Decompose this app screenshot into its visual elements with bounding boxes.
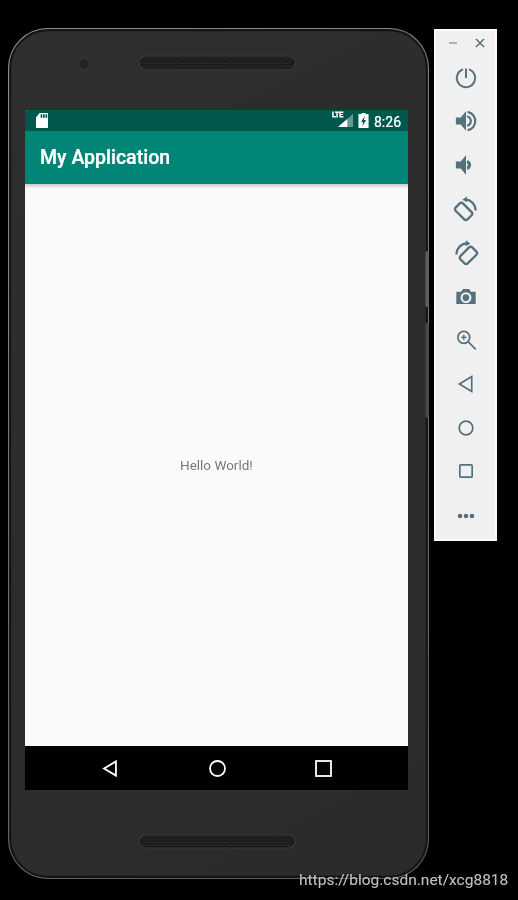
button[interactable]: Minimize [442, 32, 464, 54]
button[interactable]: Zoom [444, 318, 488, 362]
button[interactable]: Home [444, 406, 488, 450]
button[interactable]: Rotate left [444, 187, 488, 231]
button[interactable]: Volume up [444, 99, 488, 143]
button[interactable]: More [444, 494, 488, 538]
staticText: Hello World! [180, 457, 253, 473]
button[interactable]: Volume down [444, 143, 488, 187]
button[interactable]: Close [469, 32, 491, 54]
button[interactable]: Power [444, 56, 488, 100]
staticText: https://blog.csdn.net/xcg8818 [299, 871, 509, 889]
button[interactable]: Home [195, 746, 239, 790]
staticText: My Application [40, 146, 171, 169]
staticText: 8:26 [374, 114, 401, 130]
button[interactable]: Take screenshot [444, 275, 488, 319]
staticText: LTE [332, 111, 344, 119]
button[interactable]: Back [88, 746, 132, 790]
button[interactable]: My Application [25, 131, 408, 184]
button[interactable]: Rotate right [444, 231, 488, 275]
button[interactable]: Recents [301, 746, 345, 790]
button[interactable]: Back [444, 362, 488, 406]
button[interactable]: Overview [444, 449, 488, 493]
